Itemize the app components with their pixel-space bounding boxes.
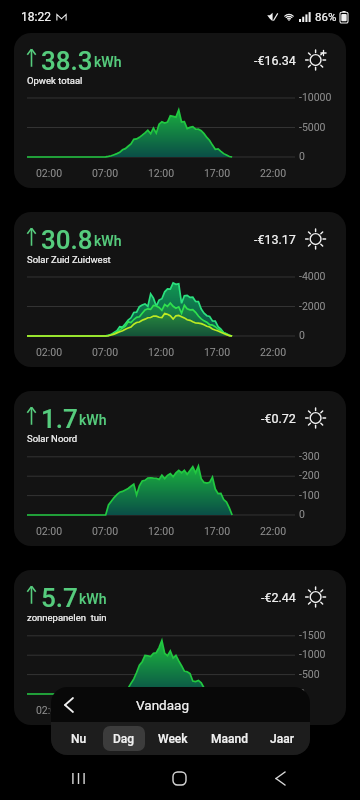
staticText: 17:00 <box>201 167 233 179</box>
staticText: 02:00 <box>33 346 65 358</box>
button[interactable]: Back <box>250 757 310 800</box>
staticText: 02:00 <box>33 704 65 716</box>
button[interactable]: Week <box>149 726 197 751</box>
staticText: -10000 <box>299 91 332 103</box>
staticText: 02:00 <box>33 525 65 537</box>
staticText: 5.7 <box>41 583 78 609</box>
button[interactable]: Weather <box>305 49 328 71</box>
button[interactable]: Home <box>149 757 209 800</box>
staticText: Week <box>158 732 188 746</box>
staticText: Vandaag <box>69 697 256 713</box>
staticText: -300 <box>299 450 320 462</box>
staticText: 0 <box>299 329 305 341</box>
button[interactable]: Dag <box>103 726 145 751</box>
staticText: Opwek totaal <box>27 75 83 86</box>
staticText: 30.8 <box>41 225 93 251</box>
staticText: 12:00 <box>145 525 177 537</box>
staticText: -1000 <box>299 648 326 660</box>
button[interactable]: Maand <box>201 726 257 751</box>
staticText: 22:00 <box>257 525 289 537</box>
staticText: Jaar <box>270 732 294 746</box>
staticText: kWh <box>79 412 107 428</box>
staticText: 22:00 <box>257 167 289 179</box>
staticText: 86% <box>315 10 337 23</box>
button[interactable]: Weather <box>305 407 328 429</box>
staticText: 02:00 <box>33 167 65 179</box>
button[interactable]: Jaar <box>261 726 303 751</box>
staticText: -5000 <box>299 121 326 133</box>
staticText: 22:00 <box>257 346 289 358</box>
button[interactable]: 30.8 <box>14 212 346 367</box>
staticText: 12:00 <box>145 167 177 179</box>
staticText: 38.3 <box>41 46 93 72</box>
staticText: Dag <box>113 732 135 746</box>
staticText: kWh <box>79 591 107 607</box>
staticText: -500 <box>299 668 320 680</box>
staticText: 07:00 <box>89 167 121 179</box>
staticText: 07:00 <box>89 346 121 358</box>
staticText: 0 <box>299 150 305 162</box>
staticText: -€0.72 <box>261 411 296 426</box>
button[interactable]: Nu <box>58 726 99 751</box>
button[interactable]: Weather <box>305 228 328 250</box>
staticText: 17:00 <box>201 525 233 537</box>
button[interactable]: Weather <box>305 586 328 608</box>
staticText: 18:22 <box>21 10 51 24</box>
staticText: 07:00 <box>89 525 121 537</box>
staticText: 0 <box>299 687 305 699</box>
staticText: -200 <box>299 469 320 481</box>
staticText: -2000 <box>299 300 326 312</box>
staticText: -100 <box>299 489 320 501</box>
button[interactable]: 38.3 <box>14 33 346 188</box>
staticText: 12:00 <box>145 704 177 716</box>
staticText: 0 <box>299 508 305 520</box>
staticText: Nu <box>71 732 87 746</box>
staticText: kWh <box>94 233 122 249</box>
staticText: -4000 <box>299 270 326 282</box>
staticText: -€13.17 <box>254 232 296 247</box>
staticText: Solar Zuid Zuidwest <box>27 254 111 265</box>
staticText: 1.7 <box>41 404 78 430</box>
button[interactable]: 1.7 <box>14 391 346 546</box>
button[interactable]: Recent apps <box>48 757 108 800</box>
staticText: 12:00 <box>145 346 177 358</box>
staticText: Solar Noord <box>27 433 78 444</box>
button[interactable]: Previous day <box>51 687 87 722</box>
staticText: -€2.44 <box>261 590 296 605</box>
staticText: -1500 <box>299 629 326 641</box>
staticText: kWh <box>94 54 122 70</box>
staticText: Maand <box>211 732 248 746</box>
staticText: -€16.34 <box>254 53 296 68</box>
staticText: zonnepanelen tuin <box>27 612 107 623</box>
staticText: 17:00 <box>201 346 233 358</box>
button[interactable]: 5.7 <box>14 570 346 725</box>
